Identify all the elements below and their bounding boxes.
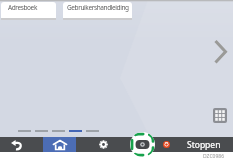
- button[interactable]: Next page: [213, 39, 229, 65]
- button[interactable]: Back: [0, 137, 43, 152]
- button[interactable]: Stoppen: [187, 139, 221, 151]
- staticText: Adresboek: [8, 3, 37, 12]
- button[interactable]: Scanning: [130, 132, 155, 157]
- button[interactable]: Thumbnails: [213, 108, 227, 123]
- button[interactable]: Settings: [99, 140, 108, 149]
- button[interactable]: Adresboek: [1, 2, 56, 20]
- staticText: Gebruikershandleiding: [67, 3, 129, 12]
- button[interactable]: Gebruikershandleiding: [63, 2, 132, 20]
- staticText: DZC0986: [203, 153, 225, 160]
- button[interactable]: Home: [43, 137, 76, 152]
